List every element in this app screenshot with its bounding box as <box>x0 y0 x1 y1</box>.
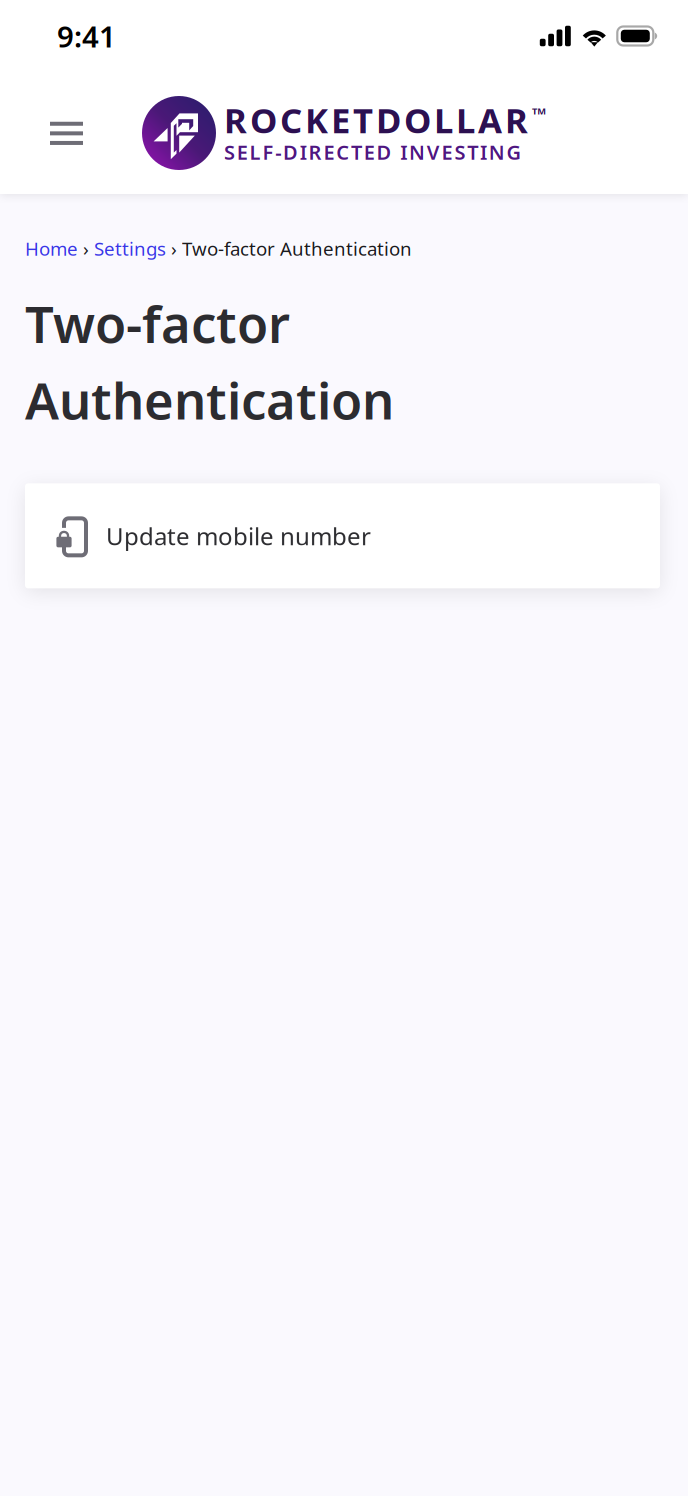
staticText: SELF-DIRECTED INVESTING <box>224 139 522 165</box>
staticText: › <box>83 236 89 261</box>
staticText: 9:41 <box>57 16 116 55</box>
staticText: ROCKETDOLLAR <box>224 97 528 143</box>
button[interactable]: Menu <box>34 98 99 168</box>
staticText: Home <box>25 236 78 261</box>
staticText: Two-factor <box>25 290 290 357</box>
staticText: Authentication <box>25 366 394 433</box>
button[interactable]: Settings <box>94 236 166 261</box>
staticText: TM <box>532 105 546 117</box>
staticText: Settings <box>94 236 166 261</box>
button[interactable]: Update mobile number <box>25 483 660 588</box>
button[interactable]: Home <box>25 236 78 261</box>
staticText: › <box>171 236 177 261</box>
staticText: Update mobile number <box>106 520 371 552</box>
staticText: Two-factor Authentication <box>182 236 412 261</box>
